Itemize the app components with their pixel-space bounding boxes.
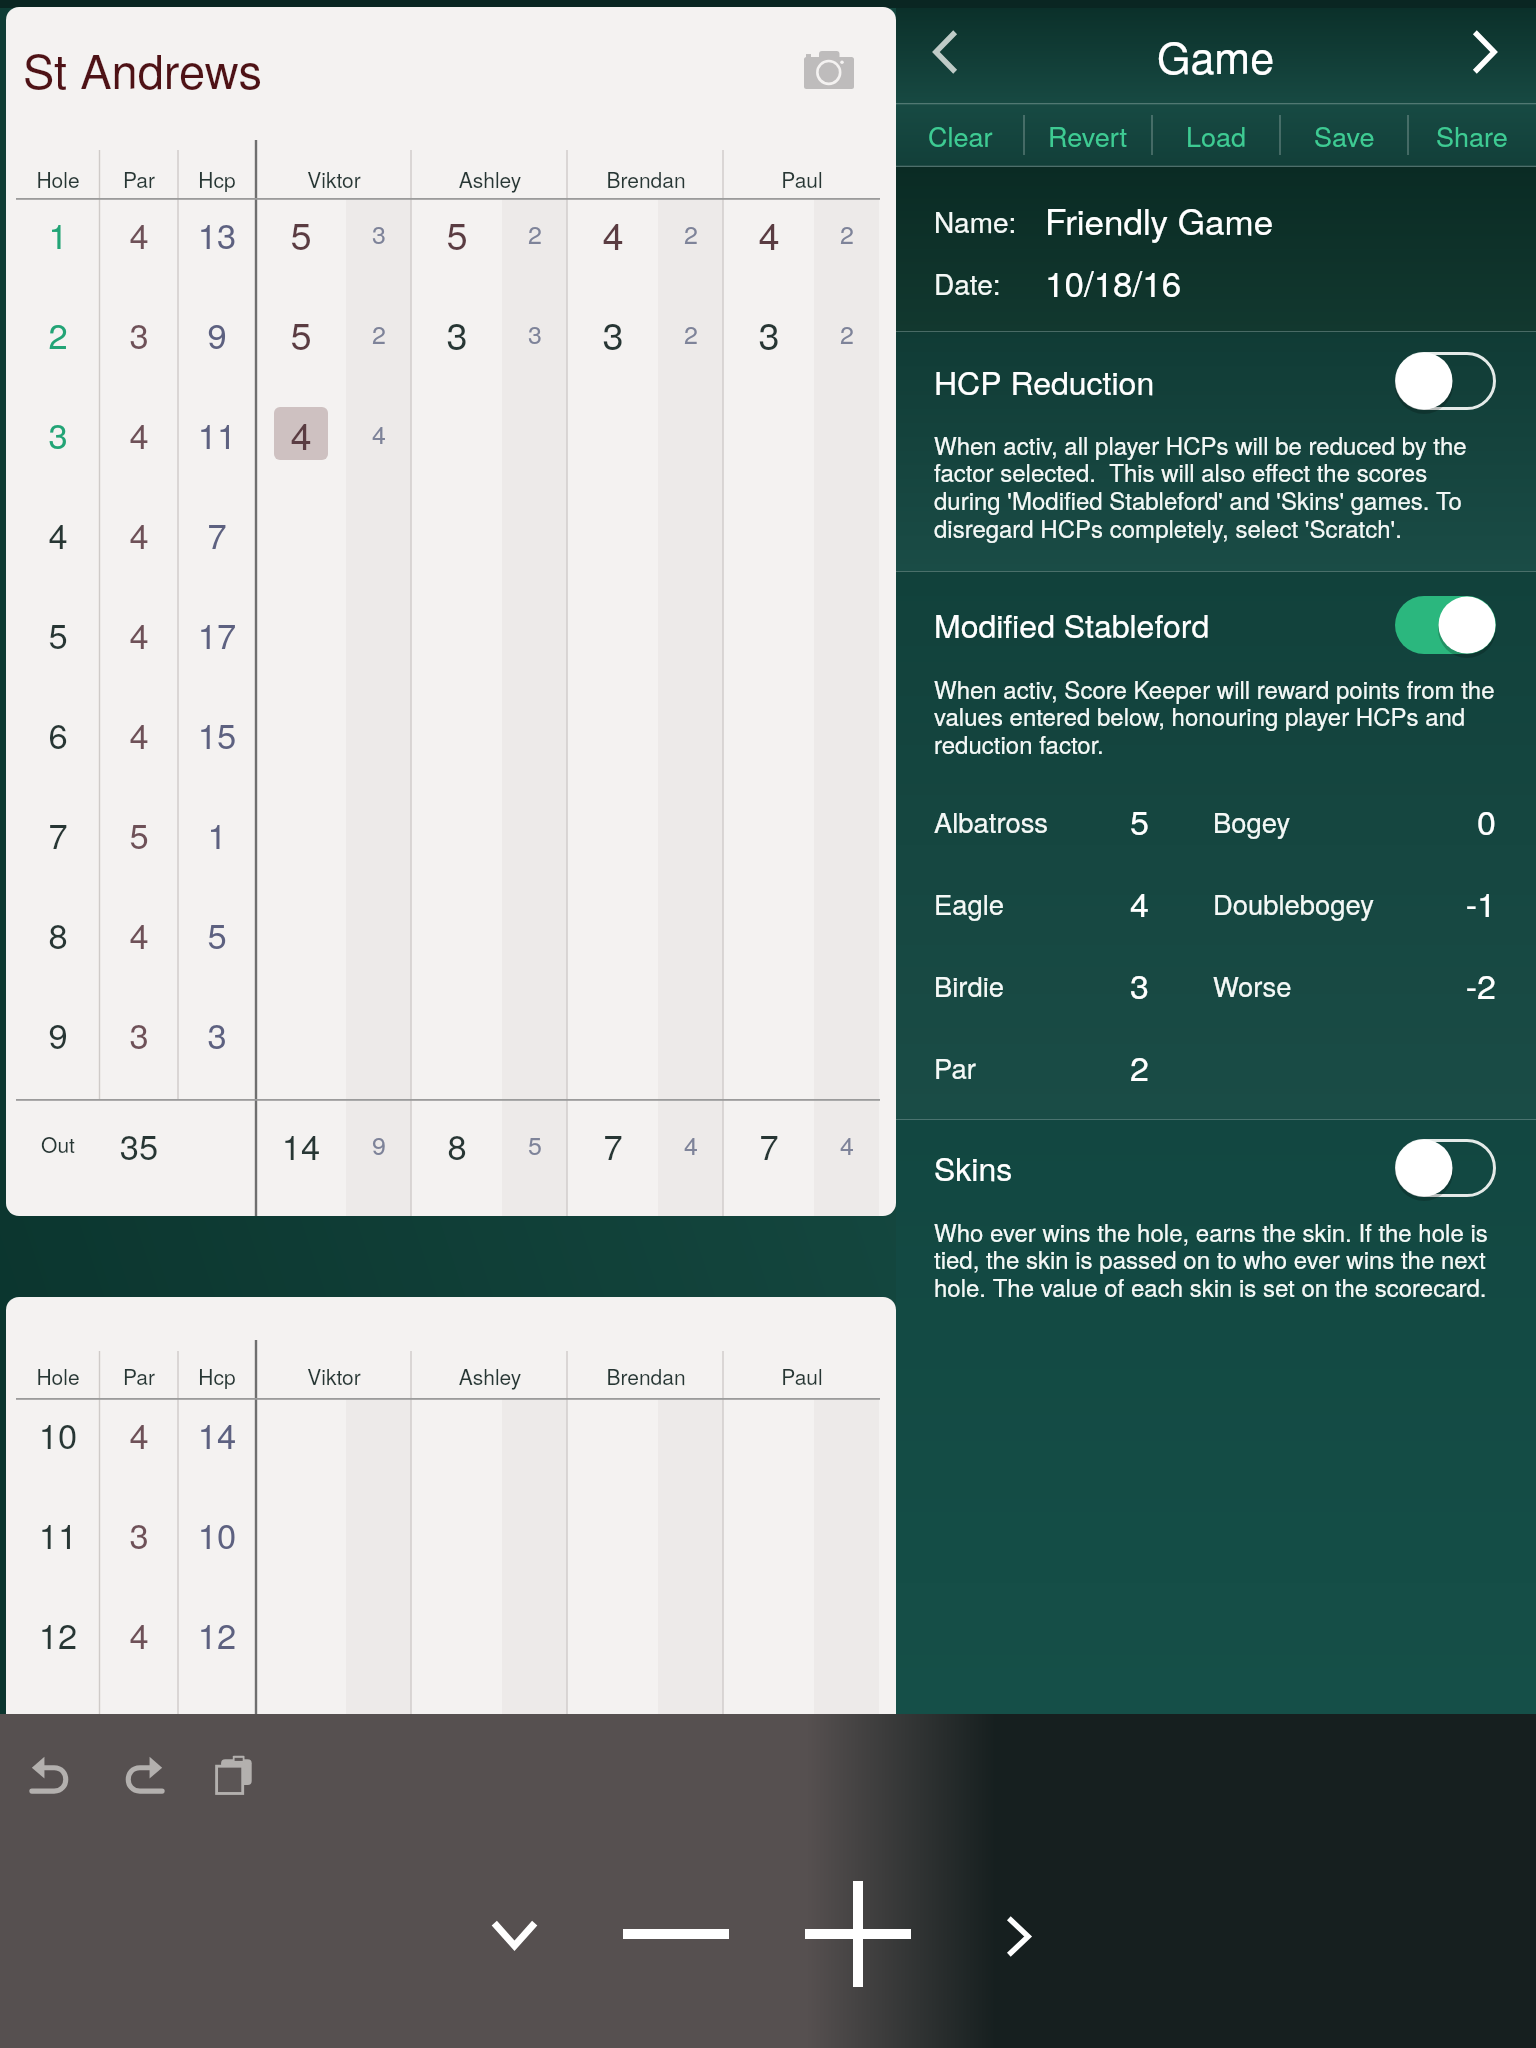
staticText: 4	[339, 415, 419, 451]
staticText: 4	[241, 406, 361, 460]
button[interactable]: Take photo	[804, 51, 854, 89]
staticText: 5	[397, 206, 517, 260]
staticText: Brendan	[546, 1361, 746, 1391]
staticText: 10	[0, 1409, 118, 1458]
staticText: Birdie	[934, 966, 1005, 1005]
staticText: HCP Reduction	[934, 358, 1155, 404]
button[interactable]: Skins toggle	[1391, 1134, 1502, 1204]
staticText: Viktor	[244, 1361, 424, 1391]
button[interactable]: Undo	[12, 1738, 92, 1812]
staticText: 2	[1130, 1042, 1149, 1091]
staticText: 15	[157, 709, 277, 758]
staticText: 4	[79, 609, 199, 658]
button[interactable]: Modified Stableford toggle	[1391, 591, 1502, 661]
staticText: Hcp	[157, 1361, 277, 1391]
staticText: 4	[79, 909, 199, 958]
staticText: 3	[709, 306, 829, 360]
staticText: Par	[79, 164, 199, 194]
staticText: When activ, Score Keeper will reward poi…	[934, 671, 1495, 761]
button[interactable]: Bogey 0	[1196, 787, 1516, 855]
staticText: Hcp	[157, 164, 277, 194]
staticText: Par	[934, 1048, 976, 1087]
staticText: 5	[0, 609, 118, 658]
button[interactable]: Hide keyboard	[444, 1880, 585, 1988]
staticText: Eagle	[934, 884, 1005, 923]
staticText: 35	[79, 1120, 199, 1169]
staticText: 2	[339, 315, 419, 351]
button[interactable]: Albatross 5	[916, 787, 1186, 855]
button[interactable]: Eagle 4	[916, 869, 1186, 937]
staticText: 3	[495, 315, 575, 351]
staticText: Bogey	[1213, 802, 1291, 841]
button[interactable]: Date: 10/18/16	[916, 252, 1516, 312]
staticText: 8	[397, 1120, 517, 1169]
staticText: 12	[157, 1609, 277, 1658]
staticText: 1	[157, 809, 277, 858]
staticText: 5	[79, 809, 199, 858]
staticText: Albatross	[934, 802, 1049, 841]
staticText: Friendly Game	[1045, 195, 1274, 245]
button[interactable]: Selected score cell, Viktor hole 3	[274, 407, 328, 460]
button[interactable]: Par 2	[916, 1033, 1186, 1101]
staticText: 1	[0, 209, 118, 258]
staticText: 0	[1346, 796, 1496, 845]
staticText: 5	[241, 206, 361, 260]
staticText: 5	[157, 909, 277, 958]
staticText: 7	[553, 1120, 673, 1169]
staticText: 9	[157, 309, 277, 358]
staticText: 3	[339, 215, 419, 251]
button[interactable]: Name: Friendly Game	[916, 190, 1516, 250]
staticText: 4	[709, 206, 829, 260]
staticText: 11	[0, 1509, 118, 1558]
button[interactable]: Minus	[605, 1880, 746, 1988]
staticText: 3	[79, 1509, 199, 1558]
staticText: When activ, all player HCPs will be redu…	[934, 427, 1467, 545]
staticText: 14	[241, 1120, 361, 1169]
staticText: 7	[709, 1120, 829, 1169]
button[interactable]: Birdie 3	[916, 951, 1186, 1019]
button[interactable]: Clear	[896, 103, 1024, 167]
staticText: Skins	[934, 1144, 1013, 1190]
staticText: 4	[79, 409, 199, 458]
staticText: Who ever wins the hole, earns the skin. …	[934, 1214, 1488, 1304]
staticText: Paul	[712, 164, 892, 194]
staticText: Share	[1436, 116, 1508, 155]
button[interactable]: Worse -2	[1196, 951, 1516, 1019]
staticText: 2	[651, 215, 731, 251]
staticText: Doublebogey	[1213, 884, 1374, 923]
button[interactable]: Load	[1152, 103, 1280, 167]
staticText: 4	[79, 1409, 199, 1458]
staticText: Ashley	[400, 164, 580, 194]
staticText: 2	[495, 215, 575, 251]
staticText: -1	[1346, 878, 1496, 927]
staticText: Date:	[934, 263, 1001, 303]
staticText: Brendan	[546, 164, 746, 194]
staticText: 3	[157, 1009, 277, 1058]
button[interactable]: HCP Reduction toggle	[1391, 347, 1502, 417]
staticText: Load	[1186, 116, 1247, 155]
staticText: 7	[157, 509, 277, 558]
button[interactable]: Redo	[102, 1738, 182, 1812]
button[interactable]: Forward	[1432, 0, 1536, 103]
button[interactable]: Copy	[195, 1738, 275, 1812]
staticText: Viktor	[244, 164, 424, 194]
staticText: Par	[79, 1361, 199, 1391]
staticText: 3	[397, 306, 517, 360]
button[interactable]: Doublebogey -1	[1196, 869, 1516, 937]
button[interactable]: Save	[1280, 103, 1408, 167]
button[interactable]: Plus	[787, 1880, 928, 1988]
button[interactable]: Revert	[1024, 103, 1152, 167]
button[interactable]: Share	[1408, 103, 1536, 167]
staticText: 7	[0, 809, 118, 858]
staticText: 9	[339, 1126, 419, 1162]
staticText: 2	[807, 315, 887, 351]
staticText: Hole	[0, 1361, 118, 1391]
staticText: 4	[0, 509, 118, 558]
staticText: 3	[79, 1009, 199, 1058]
staticText: 4	[79, 709, 199, 758]
button[interactable]: Back	[896, 0, 994, 103]
staticText: 3	[0, 409, 118, 458]
staticText: 4	[807, 1126, 887, 1162]
button[interactable]: Next	[948, 1882, 1089, 1990]
staticText: Game	[1157, 25, 1275, 87]
